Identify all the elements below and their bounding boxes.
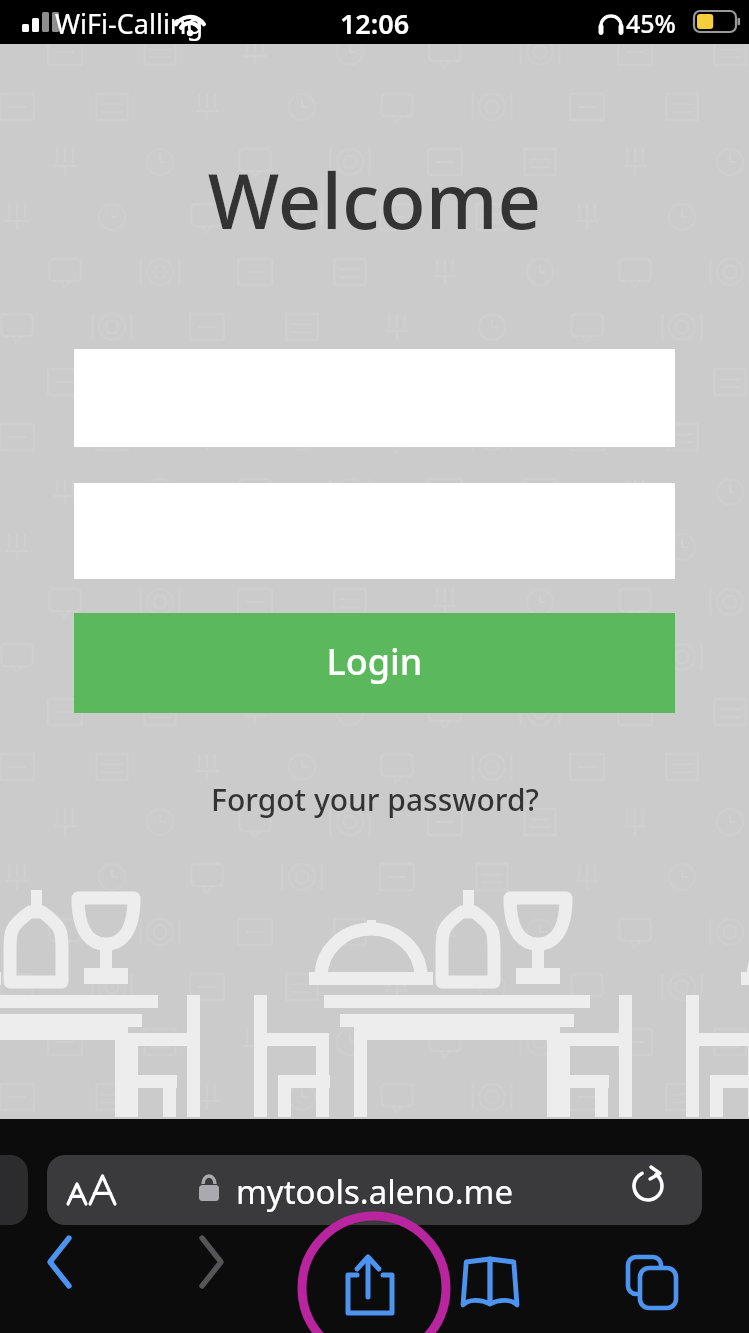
staticText: 45%: [626, 6, 706, 40]
button[interactable]: Forward: [162, 1240, 262, 1333]
button[interactable]: Share: [312, 1240, 436, 1333]
staticText: 12:06: [0, 5, 749, 42]
button[interactable]: Forgot your password?: [205, 772, 545, 824]
button[interactable]: Login: [74, 613, 675, 713]
staticText: Login: [74, 637, 675, 686]
button[interactable]: Bookmarks: [466, 1240, 566, 1333]
button[interactable]: Back: [10, 1240, 110, 1333]
staticText: mytools.aleno.me: [0, 1169, 749, 1214]
staticText: WiFi-Calling: [55, 5, 295, 42]
staticText: Welcome: [0, 148, 749, 252]
button[interactable]: Tabs: [622, 1240, 722, 1333]
button[interactable]: Address bar mytools.aleno.me: [47, 1155, 702, 1225]
staticText: Forgot your password?: [205, 779, 545, 820]
